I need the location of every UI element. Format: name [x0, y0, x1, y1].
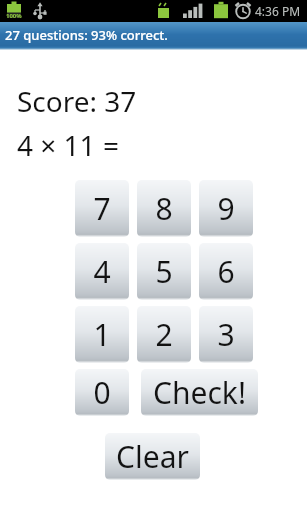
button[interactable]: Clear	[105, 433, 200, 480]
staticText: 5	[155, 251, 173, 292]
button[interactable]: 7	[75, 180, 129, 237]
button[interactable]: 4	[75, 243, 129, 300]
staticText: 1	[93, 314, 111, 355]
staticText: 6	[217, 251, 235, 292]
staticText: 27 questions: 93% correct.	[5, 26, 168, 44]
button[interactable]: 2	[137, 306, 191, 363]
staticText: 4:36 PM	[255, 3, 301, 19]
staticText: 4	[93, 251, 111, 292]
staticText: 3	[217, 314, 235, 355]
button[interactable]: 1	[75, 306, 129, 363]
button[interactable]: 0	[75, 369, 129, 416]
button[interactable]: 6	[199, 243, 253, 300]
staticText: 4G	[148, 8, 159, 19]
button[interactable]: 9	[199, 180, 253, 237]
staticText: Score: 37	[17, 82, 137, 120]
button[interactable]: 8	[137, 180, 191, 237]
staticText: 7	[93, 188, 111, 229]
button[interactable]: Check!	[141, 369, 258, 416]
staticText: Check!	[153, 372, 246, 413]
button[interactable]: 27 questions: 93% correct.	[0, 22, 307, 50]
staticText: 0	[93, 372, 111, 413]
staticText: 4 × 11 =	[17, 126, 119, 164]
staticText: 2	[155, 314, 173, 355]
button[interactable]: 3	[199, 306, 253, 363]
staticText: 100%	[6, 12, 22, 20]
staticText: Clear	[116, 436, 189, 477]
staticText: 8	[155, 188, 173, 229]
staticText: 9	[217, 188, 235, 229]
button[interactable]: 5	[137, 243, 191, 300]
